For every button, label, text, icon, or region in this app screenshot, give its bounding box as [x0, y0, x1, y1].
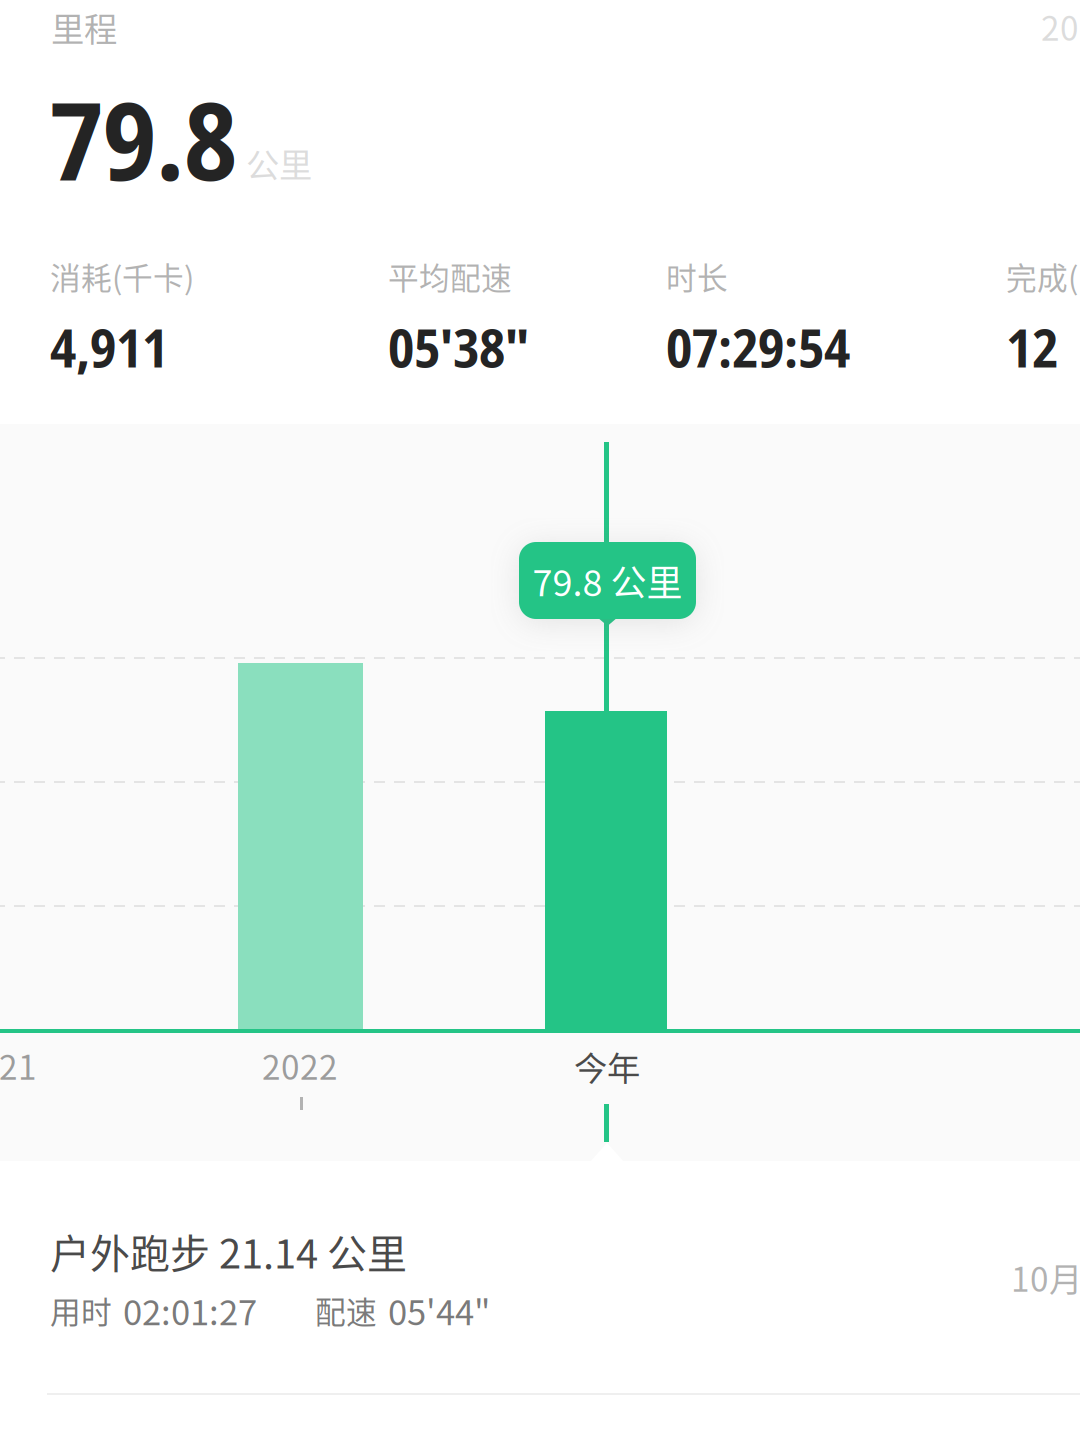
staticText: 10月 — [1011, 1253, 1080, 1301]
button[interactable]: 2022 年里程 — [238, 663, 363, 1031]
staticText: 今年 — [574, 1042, 640, 1090]
staticText: 完成( — [1006, 254, 1078, 298]
staticText: 时长 — [666, 254, 728, 298]
staticText: 消耗(千卡) — [50, 254, 194, 298]
staticText: 79.8 公里 — [532, 554, 682, 606]
staticText: 里程 — [51, 3, 117, 51]
staticText: 02:01:27 — [123, 1285, 257, 1335]
staticText: 4,911 — [50, 310, 168, 383]
staticText: 户外跑步 21.14 公里 — [50, 1222, 407, 1280]
staticText: 20 — [1041, 2, 1079, 50]
staticText: 21 — [0, 1041, 37, 1089]
staticText: 配速 — [315, 1288, 377, 1332]
staticText: 05'44" — [388, 1285, 490, 1335]
staticText: 05'38" — [388, 310, 529, 383]
button[interactable]: 户外跑步 21.14 公里 — [0, 1161, 1080, 1440]
staticText: 公里 — [246, 139, 312, 187]
staticText: 用时 — [50, 1288, 112, 1332]
staticText: 12 — [1006, 310, 1058, 383]
staticText: 07:29:54 — [666, 310, 850, 383]
staticText: 2022 — [262, 1041, 338, 1089]
staticText: 平均配速 — [388, 254, 512, 298]
staticText: 79.8 — [50, 65, 237, 212]
